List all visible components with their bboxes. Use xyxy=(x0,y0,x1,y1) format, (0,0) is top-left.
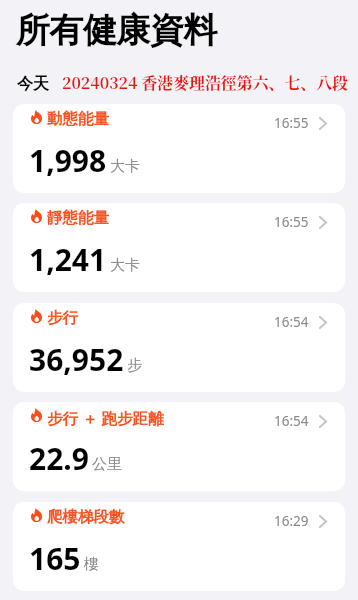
staticText: 今天 xyxy=(17,74,49,94)
button[interactable]: 爬樓梯段數 xyxy=(13,502,345,591)
staticText: 步 xyxy=(127,356,142,375)
staticText: 1,998 xyxy=(29,140,107,181)
staticText: 步行 ＋ 跑步距離 xyxy=(47,407,164,428)
staticText: 16:54 xyxy=(274,313,309,331)
staticText: 所有健康資料 xyxy=(16,9,217,52)
staticText: 動態能量 xyxy=(47,109,109,129)
staticText: 大卡 xyxy=(110,256,140,275)
button[interactable]: 靜態能量 xyxy=(13,203,345,292)
staticText: 16:55 xyxy=(274,114,309,132)
staticText: 16:55 xyxy=(274,213,309,231)
button[interactable]: 步行 xyxy=(13,303,345,392)
staticText: 1,241 xyxy=(29,239,107,280)
staticText: 22.9 xyxy=(29,438,89,479)
staticText: 16:54 xyxy=(274,412,309,430)
staticText: 大卡 xyxy=(110,157,140,176)
staticText: 爬樓梯段數 xyxy=(47,507,125,527)
staticText: 靜態能量 xyxy=(47,208,109,228)
staticText: 20240324 香港麥理浩徑第六、七、八段 xyxy=(62,71,348,94)
staticText: 36,952 xyxy=(29,339,124,380)
staticText: 樓 xyxy=(84,555,99,574)
staticText: 16:29 xyxy=(274,512,309,530)
staticText: 165 xyxy=(29,538,81,579)
button[interactable]: 動態能量 xyxy=(13,104,345,193)
button[interactable]: 步行 ＋ 跑步距離 xyxy=(13,402,345,491)
staticText: 步行 xyxy=(47,308,78,328)
staticText: 公里 xyxy=(92,455,122,474)
